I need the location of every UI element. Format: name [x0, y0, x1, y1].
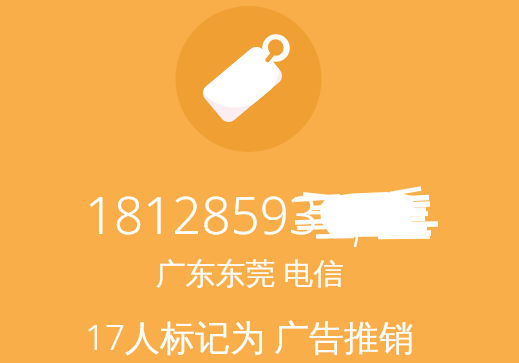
staticText: 广东东莞 电信 [0, 252, 499, 293]
staticText: 17人标记为 广告推销 [0, 313, 499, 361]
staticText: 18128593 [85, 179, 318, 248]
